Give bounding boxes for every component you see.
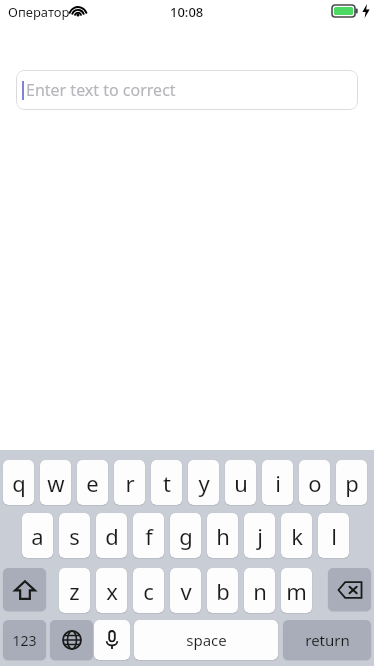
staticText: l xyxy=(331,521,337,551)
staticText: p xyxy=(345,468,359,498)
button[interactable]: d xyxy=(96,513,127,558)
button[interactable]: g xyxy=(170,513,201,558)
button[interactable]: s xyxy=(59,513,90,558)
button[interactable]: return xyxy=(283,620,371,660)
button[interactable]: i xyxy=(262,460,293,505)
button[interactable]: Shift xyxy=(3,568,46,611)
staticText: x xyxy=(106,576,118,606)
staticText: u xyxy=(234,468,248,498)
button[interactable]: x xyxy=(96,568,127,613)
staticText: s xyxy=(69,521,80,551)
staticText: q xyxy=(12,468,26,498)
staticText: b xyxy=(216,576,230,606)
button[interactable]: m xyxy=(281,568,312,613)
button[interactable]: b xyxy=(207,568,238,613)
button[interactable]: o xyxy=(299,460,330,505)
staticText: 10:08 xyxy=(170,3,204,21)
button[interactable]: y xyxy=(188,460,219,505)
staticText: return xyxy=(305,630,350,650)
staticText: t xyxy=(163,468,171,498)
staticText: Оператор xyxy=(8,3,70,21)
staticText: k xyxy=(291,521,303,551)
button[interactable]: p xyxy=(336,460,367,505)
staticText: f xyxy=(145,521,153,551)
staticText: h xyxy=(216,521,230,551)
button[interactable]: r xyxy=(114,460,145,505)
button[interactable]: f xyxy=(133,513,164,558)
staticText: o xyxy=(308,468,322,498)
button[interactable]: Enter text to correct xyxy=(16,70,358,110)
staticText: j xyxy=(257,521,263,551)
staticText: g xyxy=(179,521,193,551)
staticText: e xyxy=(86,468,99,498)
staticText: a xyxy=(31,521,44,551)
staticText: z xyxy=(69,576,80,606)
staticText: r xyxy=(125,468,135,498)
button[interactable]: l xyxy=(318,513,349,558)
button[interactable]: n xyxy=(244,568,275,613)
staticText: y xyxy=(198,468,210,498)
button[interactable]: h xyxy=(207,513,238,558)
button[interactable]: u xyxy=(225,460,256,505)
staticText: w xyxy=(47,468,65,498)
button[interactable]: Backspace xyxy=(328,568,371,611)
staticText: d xyxy=(105,521,119,551)
button[interactable]: w xyxy=(40,460,71,505)
button[interactable]: q xyxy=(3,460,34,505)
button[interactable]: t xyxy=(151,460,182,505)
staticText: Enter text to correct xyxy=(26,79,176,101)
button[interactable]: c xyxy=(133,568,164,613)
button[interactable]: Dictate xyxy=(94,620,130,660)
button[interactable]: e xyxy=(77,460,108,505)
staticText: i xyxy=(275,468,281,498)
staticText: 123 xyxy=(12,631,37,650)
button[interactable]: k xyxy=(281,513,312,558)
staticText: n xyxy=(253,576,267,606)
button[interactable]: space xyxy=(134,620,278,660)
staticText: space xyxy=(186,630,227,650)
button[interactable]: Change keyboard xyxy=(50,620,93,660)
button[interactable]: v xyxy=(170,568,201,613)
button[interactable]: 123 xyxy=(3,620,46,660)
staticText: m xyxy=(286,576,307,606)
staticText: c xyxy=(143,576,154,606)
button[interactable]: a xyxy=(22,513,53,558)
button[interactable]: z xyxy=(59,568,90,613)
staticText: v xyxy=(180,576,192,606)
button[interactable]: j xyxy=(244,513,275,558)
